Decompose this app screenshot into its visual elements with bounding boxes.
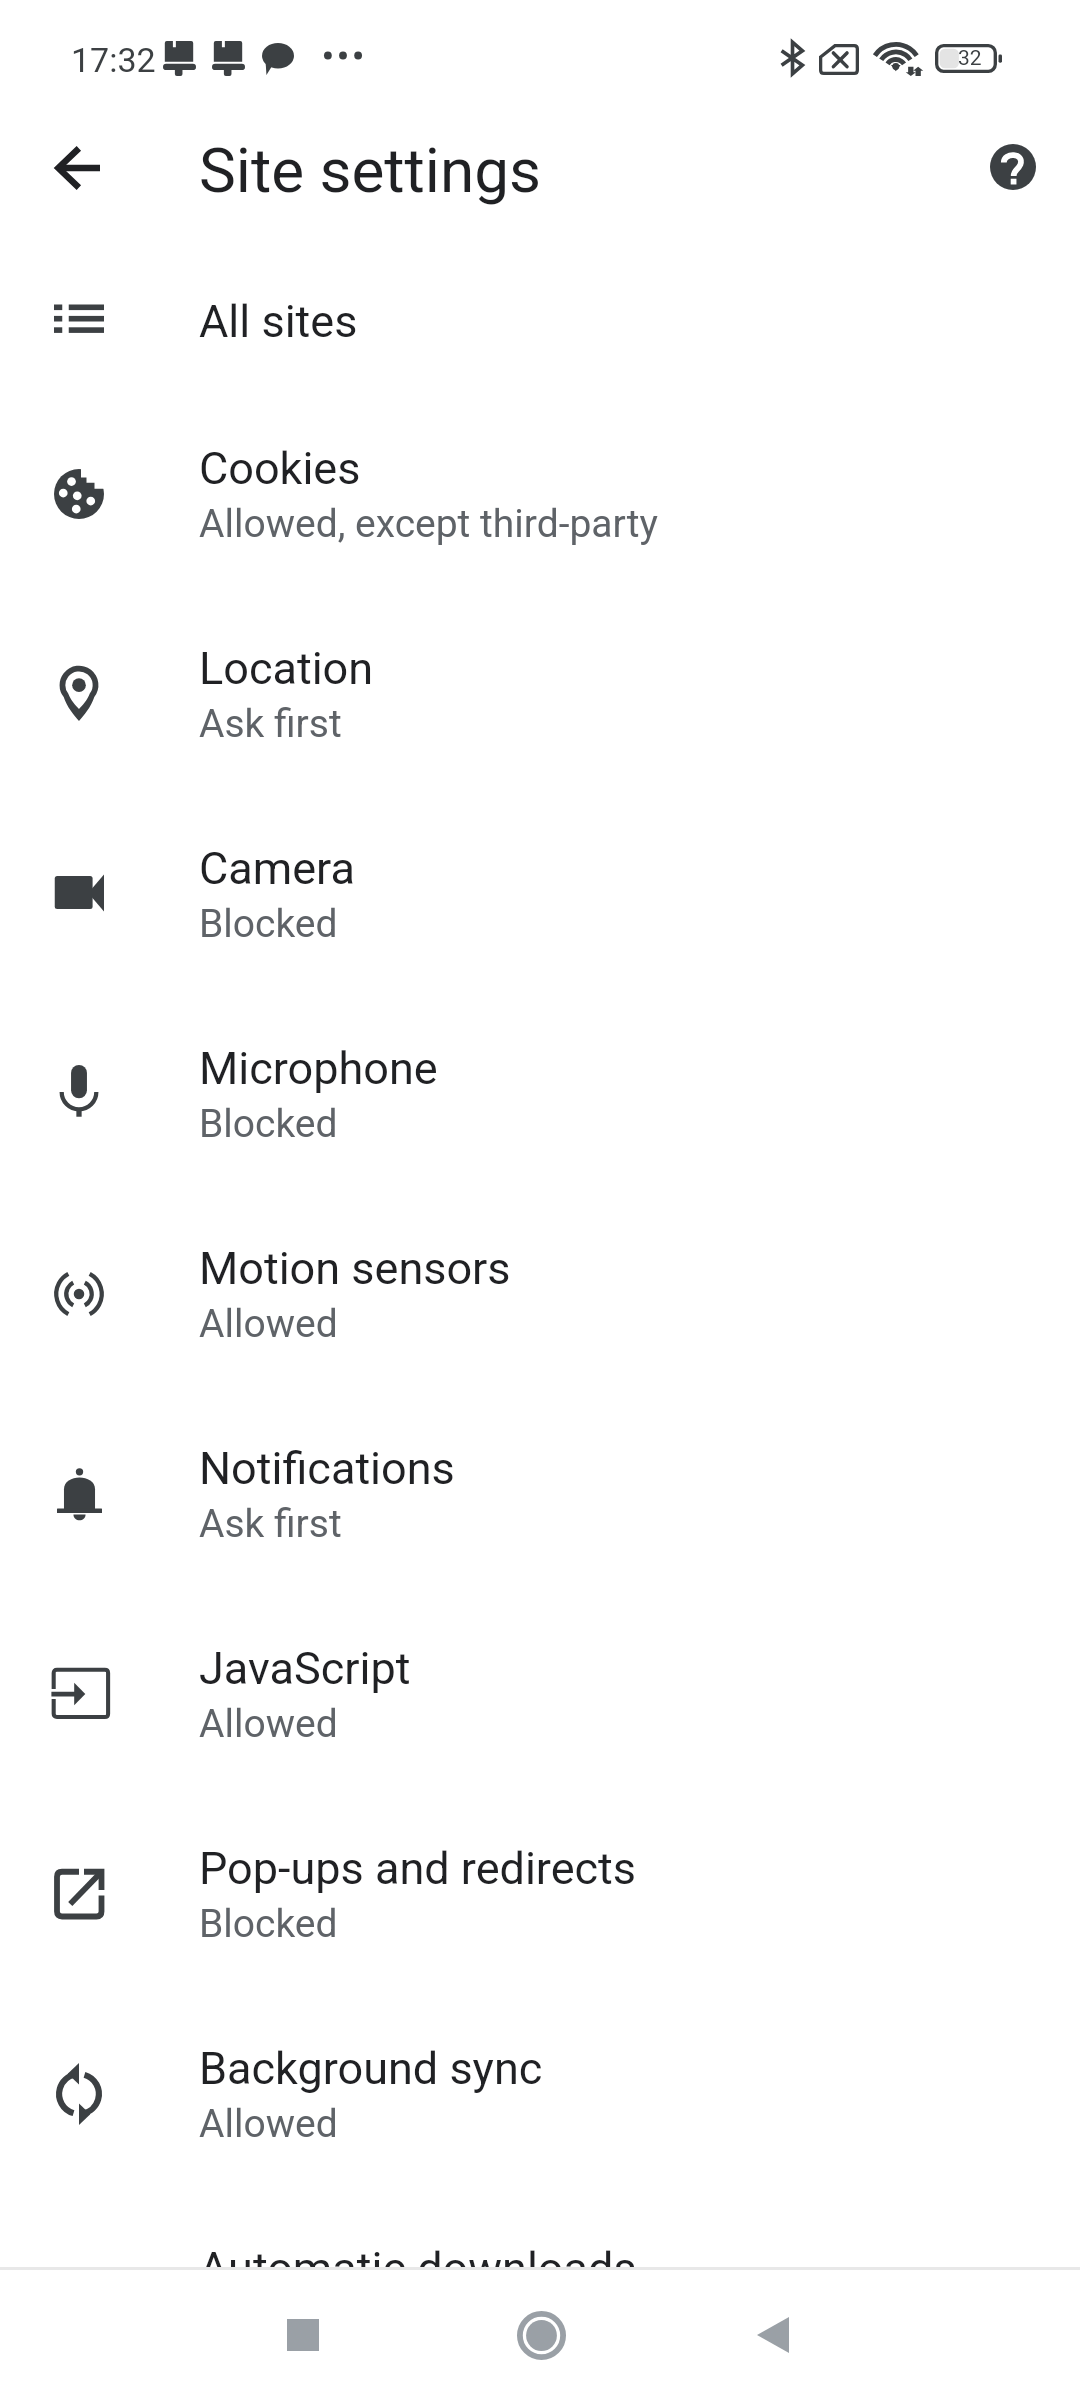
button[interactable]: Back <box>713 2275 833 2395</box>
button[interactable]: Microphone <box>0 994 1080 1194</box>
button[interactable]: Location <box>0 594 1080 794</box>
staticText: Allowed <box>199 1701 338 1747</box>
staticText: Allowed <box>199 1301 338 1347</box>
staticText: Notifications <box>199 1442 455 1495</box>
staticText: Pop-ups and redirects <box>199 1842 637 1895</box>
staticText: Blocked <box>199 1901 338 1947</box>
staticText: 17:32 <box>71 40 156 80</box>
staticText: Ask first <box>199 2301 342 2347</box>
staticText: Blocked <box>199 1101 338 1147</box>
staticText: Cookies <box>199 442 361 495</box>
staticText: Motion sensors <box>199 1242 511 1295</box>
staticText: Microphone <box>199 1042 438 1095</box>
button[interactable]: Cookies <box>0 394 1080 594</box>
button[interactable]: Camera <box>0 794 1080 994</box>
staticText: Allowed <box>199 2101 338 2147</box>
button[interactable]: Notifications <box>0 1394 1080 1594</box>
staticText: Location <box>199 642 374 695</box>
button[interactable]: Pop-ups and redirects <box>0 1794 1080 1994</box>
staticText: All sites <box>199 295 358 348</box>
button[interactable]: JavaScript <box>0 1594 1080 1794</box>
button[interactable]: Help <box>965 119 1061 215</box>
button[interactable]: All sites <box>0 221 1080 421</box>
staticText: Ask first <box>199 1501 342 1547</box>
staticText: Camera <box>199 842 355 895</box>
button[interactable]: Automatic downloads <box>0 2194 1080 2394</box>
staticText: Background sync <box>199 2042 543 2095</box>
staticText: Ask first <box>199 701 342 747</box>
staticText: Automatic downloads <box>199 2242 637 2295</box>
button[interactable]: Home <box>481 2275 601 2395</box>
button[interactable]: Back <box>29 120 125 216</box>
staticText: Blocked <box>199 901 338 947</box>
button[interactable]: Background sync <box>0 1994 1080 2194</box>
staticText: Site settings <box>199 134 541 207</box>
staticText: Allowed, except third-party <box>199 501 658 547</box>
staticText: JavaScript <box>199 1642 411 1695</box>
button[interactable]: Recent apps <box>243 2275 363 2395</box>
button[interactable]: Motion sensors <box>0 1194 1080 1394</box>
staticText: 32 <box>958 46 982 71</box>
